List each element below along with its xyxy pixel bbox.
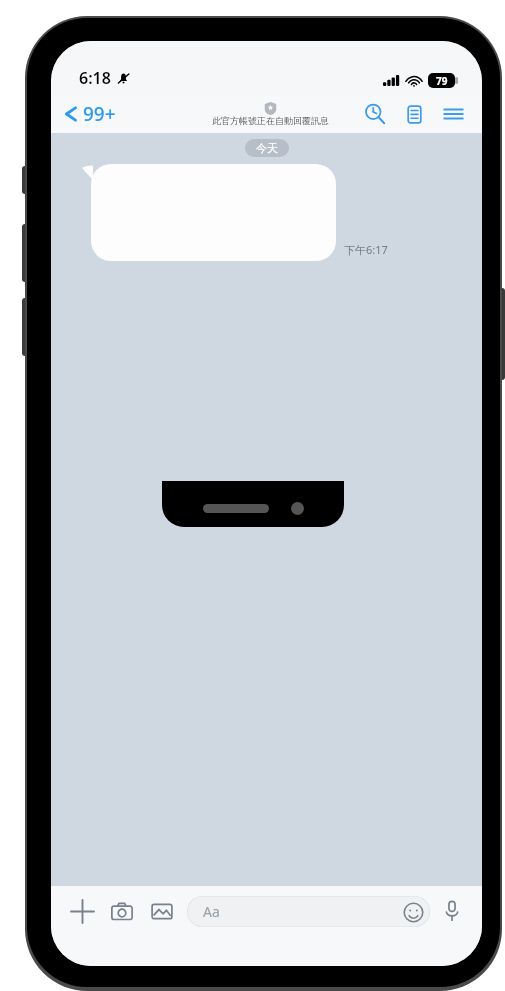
staticText: 今天 <box>256 141 278 155</box>
staticText: 6:18 <box>79 67 111 89</box>
button[interactable]: Emoji <box>401 900 425 924</box>
staticText: Aa <box>203 902 220 921</box>
button[interactable]: Menu <box>438 99 468 129</box>
button[interactable]: Voice message <box>436 895 468 927</box>
staticText: 79 <box>436 74 448 88</box>
button[interactable]: Aa <box>187 896 430 927</box>
staticText: 下午6:17 <box>344 242 388 257</box>
button[interactable]: Search history <box>360 99 390 129</box>
button[interactable]: Add <box>65 894 99 928</box>
button[interactable] <box>82 164 336 261</box>
staticText: 99+ <box>83 101 116 127</box>
button[interactable]: Gallery <box>145 894 179 928</box>
button[interactable]: Notes <box>399 99 429 129</box>
button[interactable]: 99+ <box>63 101 116 127</box>
button[interactable]: Camera <box>105 894 139 928</box>
staticText: 此官方帳號正在自動回覆訊息 <box>212 115 329 126</box>
